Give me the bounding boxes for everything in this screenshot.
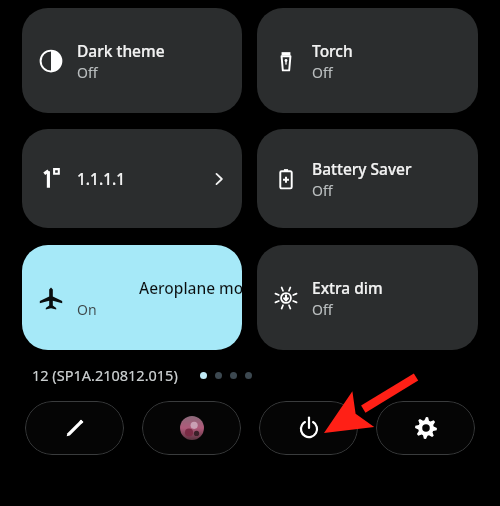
button[interactable]: Settings (376, 401, 475, 455)
button[interactable]: Edit tiles (25, 401, 124, 455)
staticText: Torch (312, 40, 353, 61)
button[interactable]: 1.1.1.1 (22, 129, 242, 228)
staticText: Off (77, 63, 98, 82)
staticText: Dark theme (77, 40, 165, 61)
staticText: 12 (SP1A.210812.015) (32, 365, 178, 385)
button[interactable]: Battery Saver (257, 129, 478, 228)
button[interactable]: User profile (142, 401, 241, 455)
other: Open 1.1.1.1 settings (210, 170, 228, 188)
button[interactable]: Aeroplane mode (22, 245, 242, 350)
staticText: Extra dim (312, 277, 383, 298)
button[interactable]: Dark theme (22, 8, 242, 113)
staticText: 1.1.1.1 (77, 168, 126, 189)
staticText: Battery Saver (312, 158, 412, 179)
staticText: Off (312, 181, 333, 200)
staticText: Off (312, 63, 333, 82)
staticText: On (77, 300, 97, 319)
staticText: Off (312, 300, 333, 319)
button[interactable]: Extra dim (257, 245, 478, 350)
button[interactable]: Torch (257, 8, 478, 113)
staticText: Aeroplane mode (139, 277, 242, 298)
button[interactable]: Power (259, 401, 358, 455)
